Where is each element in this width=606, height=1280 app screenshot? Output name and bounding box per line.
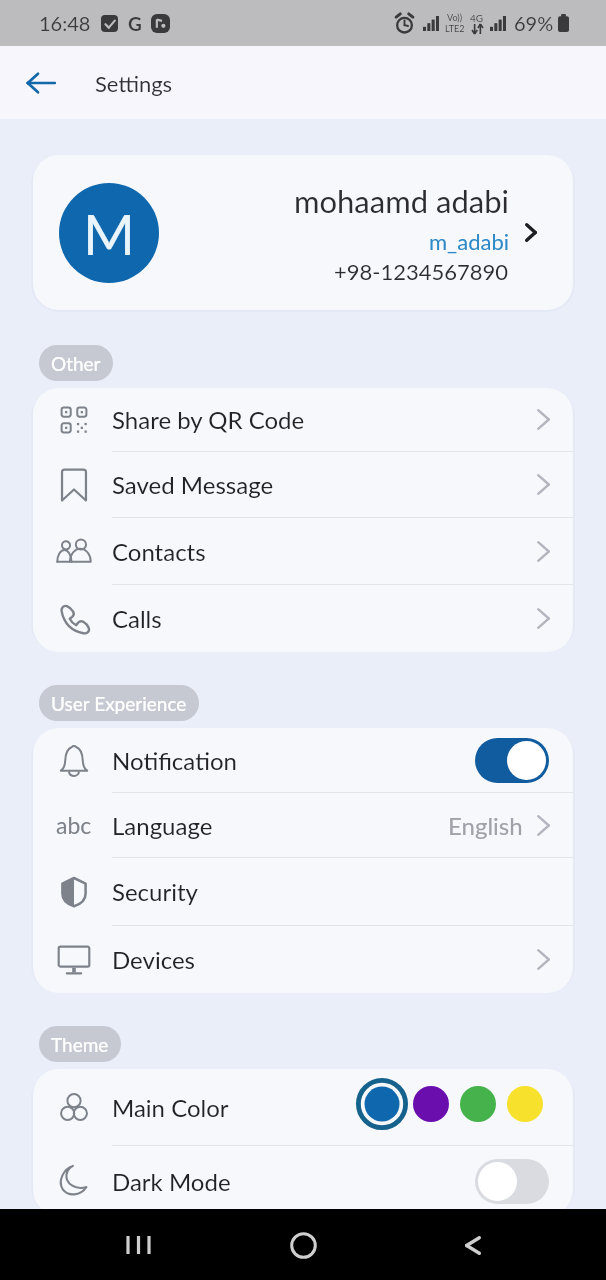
button[interactable]: Saved Message: [33, 452, 573, 517]
staticText: Saved Message: [112, 470, 274, 499]
staticText: Dark Mode: [112, 1167, 231, 1196]
button[interactable]: Notification on: [475, 738, 549, 783]
staticText: M: [83, 200, 135, 267]
button[interactable]: Contacts: [33, 518, 573, 584]
staticText: m_adabi: [429, 228, 509, 254]
staticText: Devices: [112, 945, 195, 974]
button[interactable]: Home: [275, 1217, 331, 1273]
staticText: 4G: [470, 12, 484, 24]
staticText: Contacts: [112, 537, 206, 566]
button[interactable]: Main Color: [33, 1069, 573, 1145]
staticText: mohaamd adabi: [294, 182, 509, 219]
button[interactable]: Notification: [33, 728, 573, 792]
staticText: 16:48: [39, 11, 91, 35]
staticText: LTE2: [445, 23, 465, 34]
button[interactable]: Security: [33, 858, 573, 925]
staticText: Other: [51, 352, 101, 375]
staticText: 69%: [514, 11, 554, 35]
staticText: User Experience: [51, 692, 187, 715]
button[interactable]: Share by QR Code: [33, 388, 573, 451]
button[interactable]: Recents: [110, 1217, 166, 1273]
staticText: Vo)): [447, 12, 463, 23]
button[interactable]: Back: [18, 60, 64, 106]
button[interactable]: Devices: [33, 926, 573, 993]
staticText: Notification: [112, 746, 237, 775]
button[interactable]: Dark Mode: [33, 1146, 573, 1216]
staticText: English: [448, 811, 523, 840]
staticText: Theme: [51, 1033, 109, 1056]
staticText: G: [128, 12, 142, 35]
button[interactable]: Dark mode off: [475, 1159, 549, 1204]
button[interactable]: M: [33, 155, 573, 310]
staticText: abc: [56, 811, 92, 839]
staticText: Calls: [112, 604, 162, 633]
staticText: +98-1234567890: [334, 258, 509, 284]
staticText: Security: [112, 877, 198, 906]
button[interactable]: Back: [445, 1217, 501, 1273]
button[interactable]: Calls: [33, 585, 573, 652]
staticText: Share by QR Code: [112, 405, 305, 434]
staticText: Settings: [95, 70, 173, 96]
staticText: Main Color: [112, 1093, 229, 1122]
staticText: Language: [112, 811, 213, 840]
button[interactable]: abc: [33, 793, 573, 857]
